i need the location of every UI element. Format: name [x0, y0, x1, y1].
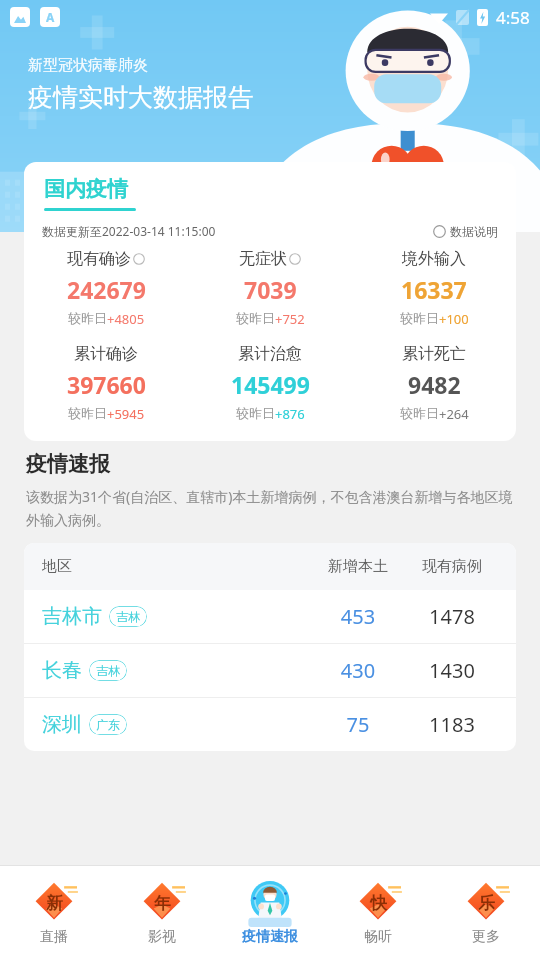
- staticText: 广东: [96, 717, 120, 732]
- staticText: 畅听: [364, 928, 392, 946]
- staticText: 疫情速报: [242, 928, 298, 946]
- staticText: 9482: [408, 369, 461, 400]
- button[interactable]: 累计确诊: [24, 344, 188, 423]
- staticText: 430: [310, 657, 406, 684]
- staticText: +100: [439, 310, 469, 328]
- button[interactable]: 畅听: [324, 866, 432, 960]
- button[interactable]: 数据说明: [433, 224, 498, 239]
- staticText: 境外输入: [402, 249, 466, 269]
- staticText: 新型冠状病毒肺炎: [28, 56, 148, 75]
- staticText: 较昨日: [400, 310, 439, 326]
- staticText: +4805: [107, 310, 145, 328]
- button[interactable]: 深圳: [24, 698, 516, 751]
- button[interactable]: 境外输入: [352, 249, 516, 328]
- staticText: 地区: [42, 557, 310, 576]
- staticText: +264: [439, 405, 469, 423]
- staticText: 1478: [406, 603, 498, 630]
- staticText: 影视: [148, 928, 176, 946]
- staticText: 快: [370, 893, 387, 914]
- staticText: A: [46, 9, 55, 25]
- staticText: +876: [275, 405, 305, 423]
- staticText: 较昨日: [68, 310, 107, 326]
- staticText: 75: [310, 711, 406, 738]
- staticText: 该数据为31个省(自治区、直辖市)本土新增病例，不包含港澳台新增与各地区境外输入…: [26, 487, 514, 529]
- staticText: 4:58: [496, 6, 530, 29]
- button[interactable]: 影视: [108, 866, 216, 960]
- button[interactable]: 累计治愈: [188, 344, 352, 423]
- staticText: 453: [310, 603, 406, 630]
- staticText: 无症状: [239, 249, 287, 269]
- button[interactable]: 疫情速报: [216, 866, 324, 960]
- staticText: +752: [275, 310, 305, 328]
- staticText: 乐: [478, 893, 495, 914]
- staticText: 1183: [406, 711, 498, 738]
- staticText: 较昨日: [68, 405, 107, 421]
- staticText: 吉林: [116, 609, 140, 624]
- staticText: 吉林市: [42, 604, 102, 629]
- staticText: 16337: [401, 274, 467, 305]
- staticText: 1430: [406, 657, 498, 684]
- staticText: 疫情速报: [26, 451, 110, 477]
- staticText: 累计死亡: [402, 344, 466, 364]
- staticText: 国内疫情: [44, 176, 128, 202]
- staticText: 累计治愈: [238, 344, 302, 364]
- staticText: 现有病例: [406, 557, 498, 576]
- staticText: 较昨日: [236, 405, 275, 421]
- staticText: 397660: [67, 369, 146, 400]
- button[interactable]: 直播: [0, 866, 108, 960]
- button[interactable]: 更多: [432, 866, 540, 960]
- staticText: 数据更新至2022-03-14 11:15:00: [42, 223, 216, 239]
- button[interactable]: 无症状: [188, 249, 352, 328]
- button[interactable]: 累计死亡: [352, 344, 516, 423]
- button[interactable]: 吉林市: [24, 590, 516, 643]
- staticText: 较昨日: [400, 405, 439, 421]
- staticText: +5945: [107, 405, 145, 423]
- staticText: 242679: [67, 274, 146, 305]
- staticText: 长春: [42, 658, 82, 683]
- staticText: 7039: [244, 274, 297, 305]
- button[interactable]: 长春: [24, 644, 516, 697]
- staticText: 直播: [40, 928, 68, 946]
- staticText: 疫情实时大数据报告: [28, 82, 253, 113]
- staticText: 较昨日: [236, 310, 275, 326]
- staticText: 更多: [472, 928, 500, 946]
- staticText: 新: [46, 893, 63, 914]
- staticText: 年: [154, 893, 171, 914]
- staticText: 数据说明: [450, 224, 498, 239]
- staticText: 深圳: [42, 712, 82, 737]
- staticText: 现有确诊: [67, 249, 131, 269]
- button[interactable]: 现有确诊: [24, 249, 188, 328]
- staticText: 145499: [231, 369, 310, 400]
- staticText: 新增本土: [310, 557, 406, 576]
- staticText: 吉林: [96, 663, 120, 678]
- staticText: 累计确诊: [74, 344, 138, 364]
- button[interactable]: 国内疫情: [44, 176, 136, 211]
